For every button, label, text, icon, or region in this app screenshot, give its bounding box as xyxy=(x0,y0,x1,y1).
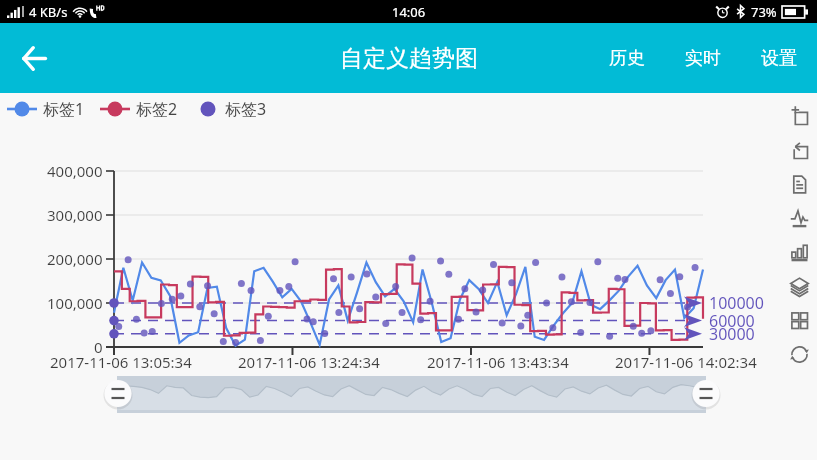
staticText: 4 KB/s xyxy=(29,3,68,21)
staticText: 0 xyxy=(94,337,103,357)
staticText: 2017-11-06 13:24:34 xyxy=(238,352,380,372)
button[interactable]: Refresh xyxy=(781,337,817,371)
button[interactable]: 标签1 xyxy=(7,98,85,120)
staticText: 300,000 xyxy=(47,205,103,225)
button[interactable]: 标签3 xyxy=(197,98,267,120)
button[interactable]: Layers xyxy=(781,269,817,303)
button[interactable]: Report xyxy=(781,167,817,201)
button[interactable]: Grid xyxy=(781,303,817,337)
button[interactable]: Trend xyxy=(781,201,817,235)
staticText: 73% xyxy=(751,3,777,21)
button[interactable]: 标签2 xyxy=(100,98,178,120)
staticText: 自定义趋势图 xyxy=(340,44,478,73)
staticText: 历史 xyxy=(609,47,645,70)
button[interactable]: 设置 xyxy=(741,23,817,93)
staticText: 2017-11-06 14:02:34 xyxy=(615,352,757,372)
staticText: 2017-11-06 13:05:34 xyxy=(50,352,192,372)
staticText: 实时 xyxy=(685,47,721,70)
button[interactable]: Back xyxy=(6,30,62,86)
staticText: 标签2 xyxy=(136,98,178,120)
staticText: 2017-11-06 13:43:34 xyxy=(427,352,569,372)
staticText: 60000 xyxy=(709,310,755,332)
staticText: 400,000 xyxy=(47,161,103,181)
staticText: 14:06 xyxy=(392,3,426,21)
staticText: 200,000 xyxy=(47,249,103,269)
button[interactable]: 历史 xyxy=(589,23,665,93)
button[interactable]: Add chart xyxy=(781,99,817,133)
button[interactable]: Bar chart xyxy=(781,235,817,269)
button[interactable]: Undo xyxy=(781,133,817,167)
staticText: 100,000 xyxy=(47,293,103,313)
staticText: 100000 xyxy=(709,292,764,314)
button[interactable]: 实时 xyxy=(665,23,741,93)
staticText: 30000 xyxy=(709,323,755,345)
staticText: 标签1 xyxy=(43,98,85,120)
staticText: 设置 xyxy=(761,47,797,70)
staticText: 标签3 xyxy=(225,98,267,120)
